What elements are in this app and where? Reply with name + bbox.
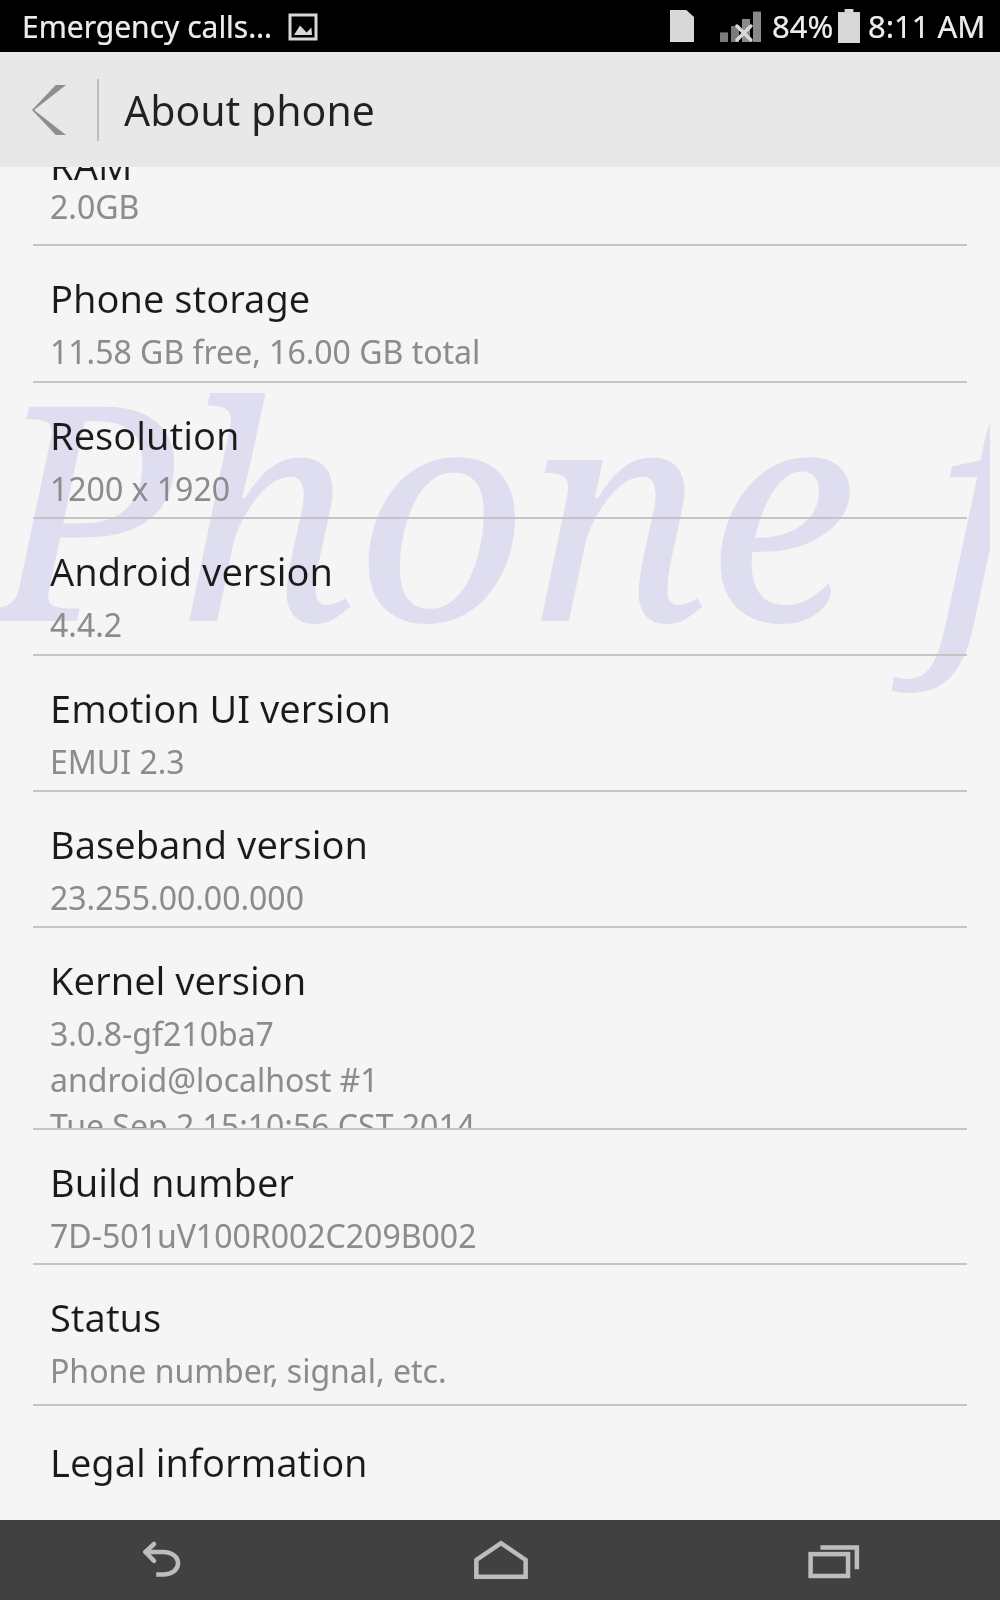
staticText: Emergency calls… xyxy=(22,6,272,47)
button[interactable]: Back xyxy=(0,1520,334,1600)
staticText: 7D-501uV100R002C209B002 xyxy=(50,1214,477,1258)
button[interactable]: Android version xyxy=(0,519,1000,654)
button[interactable]: Status xyxy=(0,1265,1000,1404)
staticText: Phone storage xyxy=(50,272,311,324)
button[interactable]: Build number xyxy=(0,1130,1000,1263)
staticText: Phone number, signal, etc. xyxy=(50,1349,447,1393)
button[interactable]: Back xyxy=(0,52,98,167)
button[interactable]: Baseband version xyxy=(0,792,1000,926)
staticText: 11.58 GB free, 16.00 GB total xyxy=(50,330,481,374)
staticText: 8:11 AM xyxy=(868,5,986,47)
button[interactable]: Kernel version xyxy=(0,928,1000,1128)
button[interactable]: RAM xyxy=(0,167,1000,244)
staticText: About phone xyxy=(124,82,375,138)
staticText: 2.0GB xyxy=(50,185,140,229)
staticText: 23.255.00.00.000 xyxy=(50,876,304,920)
button[interactable]: Emotion UI version xyxy=(0,656,1000,790)
staticText: Android version xyxy=(50,545,334,597)
button[interactable]: Recent apps xyxy=(667,1520,1000,1600)
button[interactable]: Home xyxy=(334,1520,667,1600)
button[interactable]: Legal information xyxy=(0,1406,1000,1516)
staticText: Status xyxy=(50,1291,162,1343)
staticText: 3.0.8-gf210ba7 xyxy=(50,1012,274,1056)
staticText: Legal information xyxy=(50,1436,368,1488)
staticText: android@localhost #1 xyxy=(50,1058,379,1102)
staticText: Baseband version xyxy=(50,818,368,870)
staticText: RAM xyxy=(50,167,133,191)
staticText: Phone for You xyxy=(0,300,990,709)
staticText: 84% xyxy=(772,5,834,47)
staticText: EMUI 2.3 xyxy=(50,740,185,784)
button[interactable]: Resolution xyxy=(0,383,1000,517)
staticText: Tue Sep 2 15:10:56 CST 2014 xyxy=(50,1104,475,1128)
staticText: Resolution xyxy=(50,409,240,461)
staticText: 1200 x 1920 xyxy=(50,467,231,511)
button[interactable]: Phone storage xyxy=(0,246,1000,381)
staticText: Emotion UI version xyxy=(50,682,391,734)
staticText: Build number xyxy=(50,1156,295,1208)
staticText: Kernel version xyxy=(50,954,307,1006)
staticText: 4.4.2 xyxy=(50,603,123,647)
